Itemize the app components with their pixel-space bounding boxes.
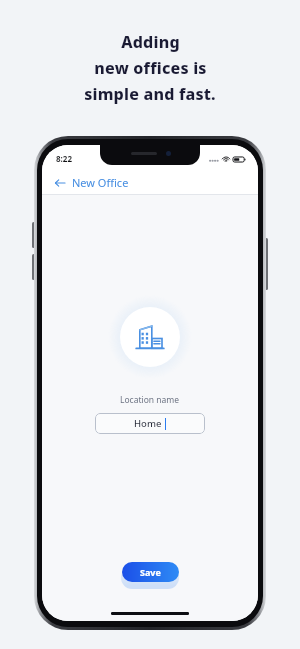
button[interactable]: Save (122, 562, 179, 582)
staticText: New Office (72, 175, 129, 190)
other: Back (54, 177, 66, 189)
staticText: new offices is (94, 57, 207, 79)
button[interactable]: Back (50, 172, 133, 193)
staticText: Home (134, 417, 162, 430)
staticText: Save (140, 566, 161, 578)
staticText: simple and fast. (84, 83, 216, 105)
staticText: 8:22 (56, 153, 72, 164)
button[interactable]: Home (95, 413, 205, 434)
staticText: Location name (120, 394, 180, 406)
staticText: Adding (121, 31, 180, 53)
